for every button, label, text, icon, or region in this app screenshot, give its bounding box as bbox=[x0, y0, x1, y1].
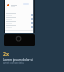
button[interactable] bbox=[5, 0, 34, 33]
button[interactable] bbox=[6, 13, 35, 17]
button[interactable] bbox=[7, 4, 9, 6]
staticText: 2x bbox=[3, 50, 9, 57]
button[interactable] bbox=[4, 34, 35, 46]
staticText: amet consectetu bbox=[3, 61, 24, 65]
staticText: Lorem ipsum dolor si bbox=[3, 58, 33, 62]
button[interactable] bbox=[6, 25, 35, 29]
button[interactable] bbox=[6, 21, 35, 25]
button[interactable] bbox=[6, 17, 35, 21]
